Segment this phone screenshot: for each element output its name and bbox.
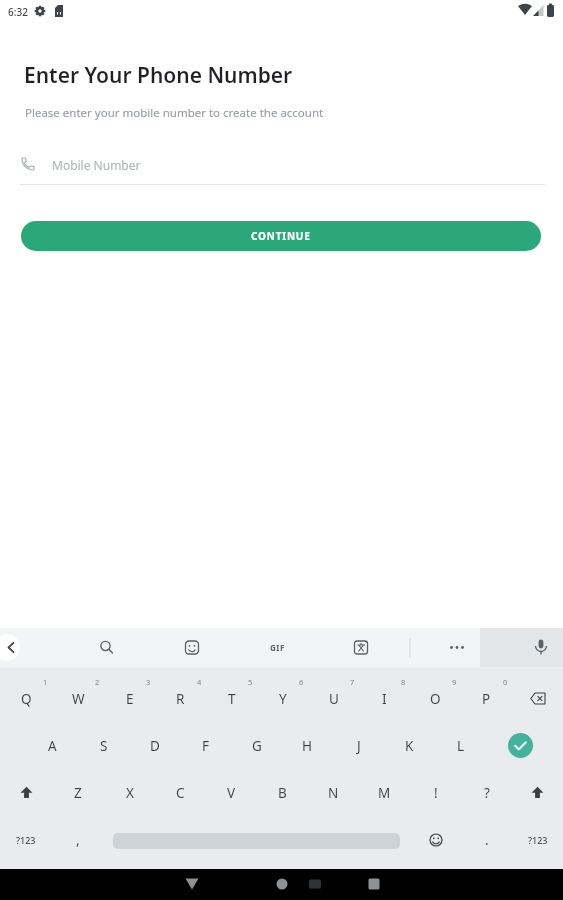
button[interactable]: [173, 628, 211, 667]
button[interactable]: [486, 722, 563, 769]
staticText: 0: [503, 677, 508, 687]
button[interactable]: [172, 869, 212, 900]
staticText: ?123: [528, 834, 548, 846]
staticText: ,: [76, 831, 80, 849]
button[interactable]: U: [308, 675, 359, 722]
button[interactable]: [512, 675, 563, 722]
staticText: M: [378, 784, 391, 802]
button[interactable]: D: [129, 722, 180, 769]
staticText: A: [48, 737, 57, 755]
button[interactable]: ?123: [0, 816, 52, 863]
staticText: V: [227, 784, 236, 802]
staticText: Y: [279, 690, 287, 708]
button[interactable]: .: [461, 816, 512, 863]
button[interactable]: C: [155, 769, 206, 816]
staticText: F: [202, 737, 210, 755]
staticText: Please enter your mobile number to creat…: [25, 105, 324, 121]
button[interactable]: R: [155, 675, 206, 722]
staticText: T: [228, 690, 236, 708]
staticText: 3: [146, 677, 151, 687]
button[interactable]: M: [359, 769, 410, 816]
staticText: Z: [74, 784, 82, 802]
staticText: .: [485, 831, 489, 849]
button[interactable]: G: [231, 722, 282, 769]
button[interactable]: ?: [461, 769, 512, 816]
button[interactable]: E: [104, 675, 155, 722]
staticText: I: [382, 690, 387, 708]
staticText: 8: [401, 677, 406, 687]
staticText: 7: [350, 677, 355, 687]
staticText: Mobile Number: [52, 157, 141, 173]
button[interactable]: Y: [257, 675, 308, 722]
staticText: J: [357, 737, 361, 755]
button[interactable]: [512, 769, 563, 816]
staticText: S: [100, 737, 108, 755]
staticText: 9: [452, 677, 457, 687]
button[interactable]: CONTINUE: [21, 221, 541, 251]
staticText: X: [126, 784, 134, 802]
button[interactable]: S: [78, 722, 129, 769]
staticText: N: [328, 784, 339, 802]
staticText: 5: [248, 677, 253, 687]
staticText: H: [302, 737, 313, 755]
staticText: Q: [21, 690, 32, 708]
button[interactable]: I: [359, 675, 410, 722]
staticText: D: [150, 737, 160, 755]
staticText: K: [405, 737, 414, 755]
button[interactable]: T: [206, 675, 257, 722]
button[interactable]: [0, 635, 26, 661]
staticText: W: [72, 690, 85, 708]
button[interactable]: Z: [52, 769, 104, 816]
button[interactable]: [0, 769, 52, 816]
button[interactable]: ?123: [512, 816, 563, 863]
button[interactable]: N: [308, 769, 359, 816]
button[interactable]: !: [410, 769, 461, 816]
button[interactable]: L: [435, 722, 486, 769]
staticText: ?123: [16, 834, 36, 846]
staticText: GIF: [270, 642, 285, 653]
staticText: 1: [43, 677, 48, 687]
staticText: B: [278, 784, 287, 802]
button[interactable]: H: [282, 722, 333, 769]
button[interactable]: GIF: [257, 628, 297, 667]
staticText: E: [126, 690, 134, 708]
staticText: P: [482, 690, 491, 708]
button[interactable]: P: [461, 675, 512, 722]
button[interactable]: J: [333, 722, 384, 769]
staticText: L: [457, 737, 465, 755]
button[interactable]: [342, 628, 380, 667]
button[interactable]: [480, 628, 563, 667]
staticText: CONTINUE: [251, 229, 311, 243]
staticText: O: [430, 690, 441, 708]
staticText: R: [176, 690, 185, 708]
button[interactable]: F: [180, 722, 231, 769]
button[interactable]: [410, 816, 461, 863]
staticText: Enter Your Phone Number: [24, 61, 293, 90]
staticText: 2: [95, 677, 100, 687]
button[interactable]: X: [104, 769, 155, 816]
staticText: 6:32: [8, 5, 28, 19]
staticText: C: [176, 784, 185, 802]
button[interactable]: A: [27, 722, 78, 769]
staticText: ?: [484, 784, 490, 802]
button[interactable]: [354, 869, 394, 900]
button[interactable]: [438, 628, 476, 667]
staticText: U: [329, 690, 339, 708]
button[interactable]: V: [206, 769, 257, 816]
button[interactable]: O: [410, 675, 461, 722]
staticText: !: [434, 784, 438, 802]
button[interactable]: W: [52, 675, 104, 722]
button[interactable]: Q: [0, 675, 52, 722]
button[interactable]: K: [384, 722, 435, 769]
button[interactable]: [88, 628, 126, 667]
staticText: 6: [299, 677, 304, 687]
staticText: 4: [197, 677, 202, 687]
button[interactable]: [262, 869, 302, 900]
button[interactable]: ,: [52, 816, 103, 863]
staticText: G: [252, 737, 262, 755]
button[interactable]: B: [257, 769, 308, 816]
